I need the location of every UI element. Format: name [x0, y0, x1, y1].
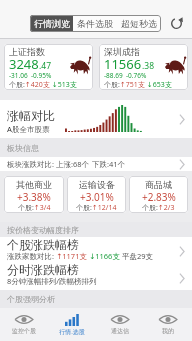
staticText: -0.76% [126, 71, 147, 80]
staticText: 监控个股 [12, 327, 36, 335]
staticText: ↑1171支 [56, 251, 87, 261]
staticText: ↓1166支 [87, 251, 120, 261]
staticText: 我的 [162, 327, 174, 335]
staticText: ↑3/4 [34, 203, 51, 213]
staticText: 分时涨跌幅榜 [7, 262, 79, 277]
staticText: +3.38% [17, 190, 51, 204]
staticText: 8分钟涨幅排列/跌幅榜排列 [7, 276, 97, 286]
staticText: 超短秒选 [121, 18, 157, 29]
staticText: 条件选股 [77, 18, 113, 29]
staticText: ↓653支 [147, 80, 172, 90]
staticText: 个股: [76, 203, 92, 213]
staticText: 板块信息 [7, 143, 39, 153]
staticText: 商品城 [145, 179, 172, 190]
staticText: 通达信 [111, 327, 129, 335]
staticText: 11566 [104, 55, 142, 73]
button[interactable]: 通达信 [96, 308, 144, 341]
staticText: 个股: [9, 80, 25, 90]
button[interactable]: 运输设备 [67, 176, 126, 213]
staticText: 个股: [104, 80, 120, 90]
button[interactable]: 条件选股 [73, 15, 117, 32]
staticText: 行情.选股 [59, 328, 85, 336]
staticText: -31.06 [9, 71, 28, 80]
staticText: 个股: [18, 203, 34, 213]
button[interactable]: 行情.选股 [48, 308, 96, 341]
staticText: 个股涨跌幅榜 [7, 237, 79, 252]
staticText: ↑751支 [120, 80, 145, 90]
staticText: 上证指数 [9, 46, 45, 57]
staticText: +3.01% [80, 190, 114, 204]
button[interactable]: 深圳成指 [99, 44, 188, 90]
staticText: .47 [39, 60, 52, 72]
staticText: +2.83% [142, 190, 176, 204]
button[interactable]: 我的 [144, 308, 192, 341]
button[interactable]: 其他商业 [4, 176, 64, 213]
staticText: -0.95% [31, 71, 52, 80]
staticText: 深圳成指 [104, 46, 140, 57]
staticText: 3248 [9, 55, 39, 73]
button[interactable]: 监控个股 [0, 308, 48, 341]
staticText: ↑12/14 [92, 203, 117, 213]
button[interactable]: 商品城 [129, 176, 188, 213]
staticText: 上涨:68个 [56, 159, 92, 169]
staticText: 平盘29支 [120, 251, 154, 261]
staticText: 涨幅对比 [7, 108, 55, 123]
button[interactable]: 行情浏览 [30, 15, 73, 32]
staticText: 行情浏览 [34, 18, 70, 29]
staticText: 下跌:41个 [92, 159, 126, 169]
button[interactable]: 上证指数 [4, 44, 93, 90]
staticText: .38 [142, 60, 155, 72]
staticText: 涨跌家数对比: [7, 251, 56, 261]
button[interactable]: 板块涨跌对比: [0, 157, 192, 171]
staticText: 其他商业 [16, 179, 52, 190]
staticText: 个股强弱分析 [7, 294, 55, 304]
staticText: ↑420支 [25, 80, 50, 90]
button[interactable]: 涨幅对比 [0, 100, 192, 138]
staticText: 板块涨跌对比: [7, 159, 56, 169]
button[interactable]: 分时涨跌幅榜 [0, 266, 192, 290]
button[interactable]: 刷新 [167, 14, 185, 32]
staticText: 按价格变动幅度排序 [7, 225, 79, 235]
button[interactable]: 个股涨跌幅榜 [0, 237, 192, 266]
staticText: ↑2/3 [158, 203, 175, 213]
staticText: -88.69 [104, 71, 123, 80]
staticText: 个股: [142, 203, 158, 213]
button[interactable]: 超短秒选 [117, 15, 161, 32]
staticText: A股全市股票 [7, 124, 50, 134]
staticText: ↓513支 [52, 80, 77, 90]
staticText: 运输设备 [79, 179, 115, 190]
